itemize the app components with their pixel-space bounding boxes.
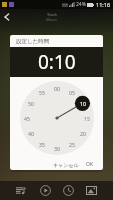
staticText: 設定した時間: [16, 38, 50, 45]
staticText: 10: [80, 100, 86, 107]
button[interactable]: Play: [36, 181, 54, 200]
staticText: 45: [24, 115, 30, 122]
staticText: 15: [84, 115, 90, 122]
staticText: キャンセル: [53, 162, 79, 168]
staticText: 00: [54, 85, 60, 92]
staticText: 40: [28, 130, 34, 137]
staticText: 35: [39, 141, 45, 148]
button[interactable]: Artwork: [82, 181, 100, 200]
staticText: 05: [69, 89, 75, 96]
staticText: Track: [47, 12, 57, 17]
button[interactable]: Playlist: [12, 181, 30, 200]
staticText: OK: [86, 161, 94, 168]
button[interactable]: キャンセル: [50, 160, 82, 170]
staticText: 25: [69, 141, 75, 148]
button[interactable]: Sleep timer: [59, 181, 77, 200]
staticText: 50: [28, 100, 34, 107]
staticText: 24%: [76, 1, 86, 8]
staticText: 20: [80, 130, 86, 137]
staticText: 11:16: [96, 1, 111, 8]
staticText: 30: [54, 145, 60, 152]
staticText: Album: [46, 17, 57, 22]
button[interactable]: Back: [0, 9, 14, 25]
staticText: 55: [39, 89, 45, 96]
staticText: 0:10: [38, 49, 76, 75]
button[interactable]: OK: [82, 159, 98, 170]
